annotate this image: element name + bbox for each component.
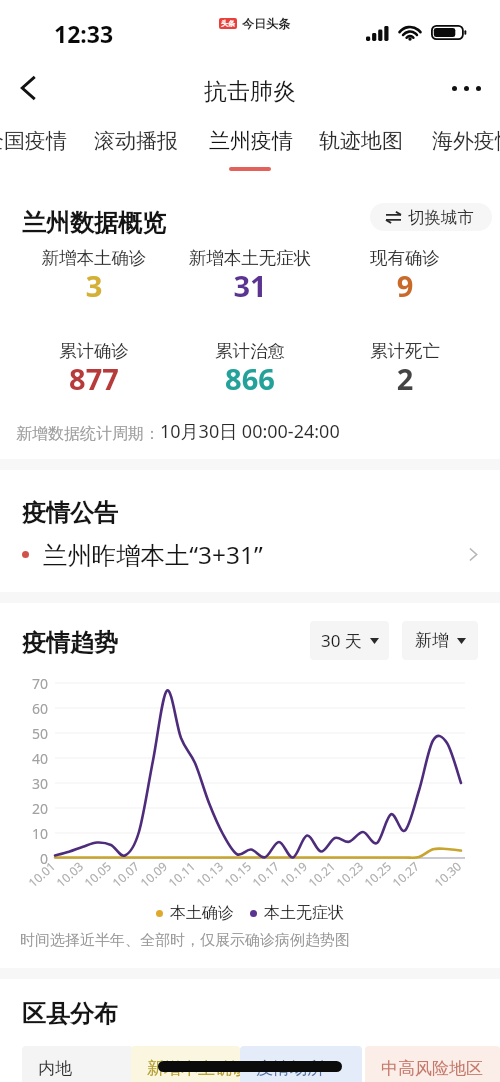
staticText: 中高风险地区 [381, 1058, 483, 1079]
staticText: 新增本土无症状 [170, 247, 330, 269]
staticText: 20 [12, 799, 48, 818]
button[interactable]: 滚动播报 [92, 124, 180, 158]
staticText: 现有确诊 [330, 247, 480, 269]
staticText: 新增本土确诊 [147, 1058, 240, 1079]
button[interactable]: 内地 [22, 1046, 133, 1082]
staticText: 本土无症状 [264, 903, 344, 923]
button[interactable]: More options [442, 64, 490, 112]
button[interactable]: 轨迹地图 [317, 124, 405, 158]
staticText: 9 [330, 266, 480, 305]
staticText: 内地 [38, 1058, 72, 1079]
staticText: 30 天 [321, 629, 362, 652]
staticText: 60 [12, 699, 48, 718]
staticText: 10.13 [193, 858, 226, 890]
staticText: 10.15 [221, 858, 254, 890]
staticText: 50 [12, 724, 48, 743]
staticText: 70 [12, 674, 48, 693]
staticText: 10 [12, 824, 48, 843]
button[interactable]: 疫情场所 [240, 1046, 362, 1082]
staticText: 兰州昨增本土“3+31” [43, 538, 263, 571]
button[interactable]: 30 天 [310, 621, 389, 660]
staticText: 兰州疫情 [209, 128, 293, 154]
staticText: 疫情场所 [256, 1058, 324, 1079]
staticText: 10.05 [81, 858, 114, 890]
staticText: 10.21 [305, 858, 338, 890]
staticText: 10.09 [137, 858, 170, 890]
button[interactable]: 切换城市 [370, 203, 492, 231]
button[interactable]: 中高风险地区 [365, 1046, 500, 1082]
staticText: 新增 [415, 630, 449, 651]
staticText: 今日头条 [242, 16, 290, 31]
button[interactable]: 全国疫情 [0, 124, 69, 158]
staticText: 10.30 [431, 858, 464, 890]
staticText: 10.23 [333, 858, 366, 890]
button[interactable]: 新增 [402, 621, 478, 660]
staticText: 31 [170, 266, 330, 305]
staticText: 兰州数据概览 [22, 208, 166, 238]
staticText: 10.07 [109, 858, 142, 890]
staticText: 新增本土确诊 [14, 247, 174, 269]
staticText: 疫情公告 [22, 498, 118, 528]
staticText: 区县分布 [22, 999, 118, 1029]
staticText: 0 [12, 849, 48, 868]
staticText: 本土确诊 [170, 903, 234, 923]
staticText: 时间选择近半年、全部时，仅展示确诊病例趋势图 [20, 931, 350, 950]
staticText: 3 [14, 266, 174, 305]
staticText: 10月30日 00:00-24:00 [160, 419, 340, 444]
staticText: 10.01 [25, 858, 58, 890]
staticText: 滚动播报 [94, 128, 178, 154]
staticText: 全国疫情 [0, 128, 67, 154]
button[interactable]: Back [4, 64, 52, 112]
staticText: 轨迹地图 [319, 128, 403, 154]
staticText: 877 [14, 359, 174, 398]
staticText: 10.25 [361, 858, 394, 890]
staticText: 30 [12, 774, 48, 793]
staticText: 新增数据统计周期： [16, 424, 160, 444]
staticText: 10.17 [249, 858, 282, 890]
button[interactable]: 海外疫情 [430, 124, 500, 158]
staticText: 海外疫情 [432, 128, 500, 154]
staticText: 10.03 [53, 858, 86, 890]
staticText: 10.27 [389, 858, 422, 890]
staticText: 疫情趋势 [22, 628, 118, 658]
staticText: 2 [330, 359, 480, 398]
staticText: 切换城市 [408, 207, 474, 228]
staticText: 12:33 [54, 18, 114, 49]
button[interactable]: 兰州疫情 [207, 124, 295, 158]
staticText: 累计确诊 [14, 340, 174, 362]
staticText: 40 [12, 749, 48, 768]
staticText: 抗击肺炎 [204, 77, 296, 106]
staticText: 累计治愈 [170, 340, 330, 362]
staticText: 10.19 [277, 858, 310, 890]
staticText: 10.11 [165, 858, 198, 890]
staticText: 头条 [221, 19, 235, 28]
staticText: 866 [170, 359, 330, 398]
button[interactable]: 兰州昨增本土“3+31” [0, 534, 500, 574]
button[interactable]: 新增本土确诊 [131, 1046, 240, 1082]
staticText: 累计死亡 [330, 340, 480, 362]
